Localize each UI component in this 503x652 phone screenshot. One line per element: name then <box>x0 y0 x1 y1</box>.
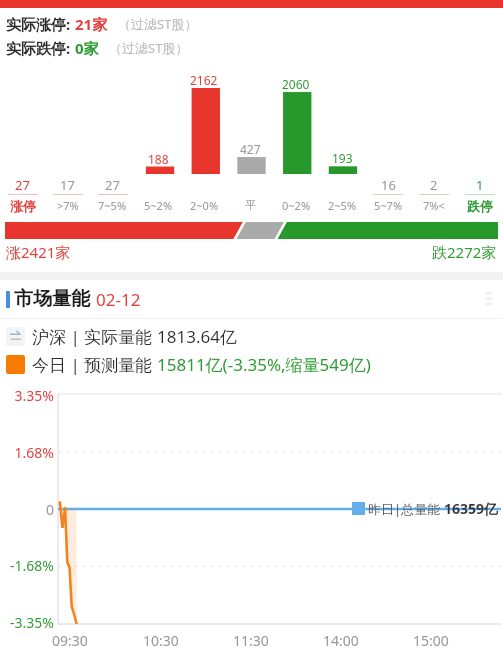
staticText: 2162 <box>190 72 218 88</box>
staticText: 21家 <box>75 14 108 34</box>
staticText: 1 <box>476 176 484 194</box>
staticText: -1.68% <box>10 556 54 575</box>
button[interactable]: 沪深 <box>6 325 503 348</box>
staticText: 5~7% <box>374 198 403 213</box>
button[interactable]: 3.35% <box>0 382 503 652</box>
staticText: 涨停 <box>10 198 36 214</box>
staticText: 15811亿(-3.35%,缩量549亿) <box>157 353 371 376</box>
staticText: 188 <box>148 151 169 167</box>
staticText: 今日 | 预测量能 <box>32 353 157 376</box>
staticText: 实际跌停: <box>6 38 75 58</box>
staticText: 427 <box>240 141 261 157</box>
staticText: 2~0% <box>190 198 219 213</box>
staticText: 09:30 <box>52 631 88 650</box>
staticText: （过滤ST股） <box>118 15 198 33</box>
staticText: 27 <box>105 176 120 194</box>
staticText: 7~5% <box>98 198 127 213</box>
staticText: （过滤ST股） <box>109 39 189 57</box>
staticText: 14:00 <box>323 631 359 650</box>
staticText: 市场量能 <box>14 287 90 311</box>
button[interactable]: 188 <box>0 66 503 218</box>
staticText: 0~2% <box>282 198 311 213</box>
staticText: 2060 <box>282 76 310 92</box>
staticText: 实际涨停: <box>6 14 75 34</box>
staticText: 02-12 <box>96 288 141 311</box>
staticText: 跌2272家 <box>432 242 497 262</box>
staticText: 0家 <box>75 38 99 58</box>
staticText: 1813.64亿 <box>157 325 237 348</box>
staticText: 7%< <box>423 198 445 213</box>
staticText: 16 <box>381 176 396 194</box>
staticText: 1.68% <box>14 443 54 462</box>
staticText: 沪深 | 实际量能 <box>32 325 157 348</box>
staticText: -3.35% <box>10 613 54 632</box>
staticText: 2 <box>430 176 438 194</box>
staticText: 涨2421家 <box>6 242 71 262</box>
staticText: 17 <box>60 176 75 194</box>
staticText: 27 <box>15 176 30 194</box>
staticText: 0 <box>45 500 54 519</box>
staticText: 10:30 <box>143 631 179 650</box>
other: 沪深 <box>6 327 25 346</box>
staticText: 昨日|总量能 <box>368 500 444 518</box>
staticText: 3.35% <box>14 386 54 405</box>
staticText: 193 <box>332 150 353 166</box>
button[interactable]: 市场量能 <box>0 280 503 318</box>
staticText: 2~5% <box>328 198 357 213</box>
other: 更多 <box>475 288 497 310</box>
staticText: 5~2% <box>144 198 173 213</box>
staticText: 16359亿 <box>444 499 499 518</box>
button[interactable] <box>5 222 498 239</box>
staticText: 15:00 <box>413 631 449 650</box>
staticText: 11:30 <box>233 631 269 650</box>
staticText: 跌停 <box>467 198 493 214</box>
staticText: 平 <box>245 198 256 212</box>
staticText: >7% <box>57 198 79 213</box>
button[interactable]: 今日 | 预测量能 <box>6 353 503 376</box>
